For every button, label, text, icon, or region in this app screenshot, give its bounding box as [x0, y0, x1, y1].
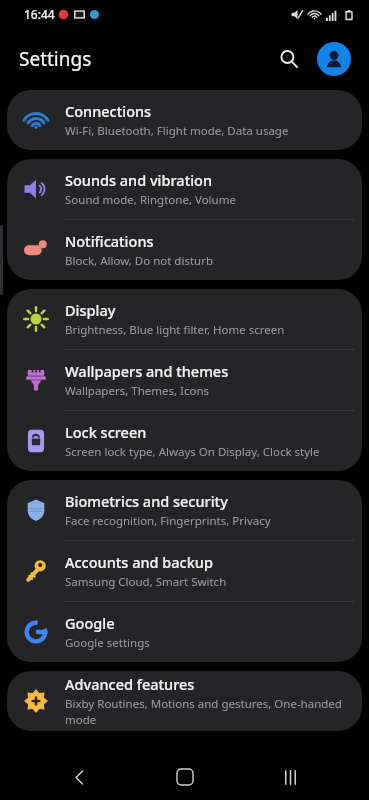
button[interactable]: Wallpapers and themes	[7, 350, 362, 410]
staticText: Face recognition, Fingerprints, Privacy	[65, 513, 271, 529]
button[interactable]: Accounts and backup	[7, 541, 362, 601]
staticText: Notifications	[65, 231, 154, 251]
button[interactable]: Advanced features	[7, 671, 362, 731]
staticText: Biometrics and security	[65, 491, 228, 511]
button[interactable]: Back	[52, 754, 106, 800]
button[interactable]: Biometrics and security	[7, 480, 362, 540]
staticText: Advanced features	[65, 674, 195, 694]
staticText: Google	[65, 613, 115, 633]
staticText: Brightness, Blue light filter, Home scre…	[65, 322, 285, 338]
staticText: Google settings	[65, 635, 150, 651]
button[interactable]: Display	[7, 289, 362, 349]
button[interactable]: Lock screen	[7, 411, 362, 471]
staticText: Wallpapers, Themes, Icons	[65, 383, 210, 399]
staticText: Connections	[65, 101, 152, 121]
staticText: Accounts and backup	[65, 552, 213, 572]
staticText: 16:44	[24, 6, 55, 22]
button[interactable]: Google	[7, 602, 362, 662]
button[interactable]: Search	[269, 39, 309, 79]
staticText: Wallpapers and themes	[65, 361, 229, 381]
staticText: Wi-Fi, Bluetooth, Flight mode, Data usag…	[65, 123, 289, 139]
button[interactable]: Account	[317, 42, 351, 76]
button[interactable]: Recents	[263, 754, 317, 800]
staticText: Display	[65, 300, 116, 320]
staticText: Block, Allow, Do not disturb	[65, 253, 213, 269]
button[interactable]: Notifications	[7, 220, 362, 280]
staticText: Lock screen	[65, 422, 147, 442]
staticText: Sounds and vibration	[65, 170, 213, 190]
staticText: Samsung Cloud, Smart Switch	[65, 574, 227, 590]
staticText: Bixby Routines, Motions and gestures, On…	[65, 696, 348, 728]
staticText: Sound mode, Ringtone, Volume	[65, 192, 236, 208]
button[interactable]: Sounds and vibration	[7, 159, 362, 219]
button[interactable]: Connections	[7, 90, 362, 150]
staticText: Screen lock type, Always On Display, Clo…	[65, 444, 320, 460]
button[interactable]: Home	[158, 754, 212, 800]
staticText: Settings	[19, 46, 92, 72]
